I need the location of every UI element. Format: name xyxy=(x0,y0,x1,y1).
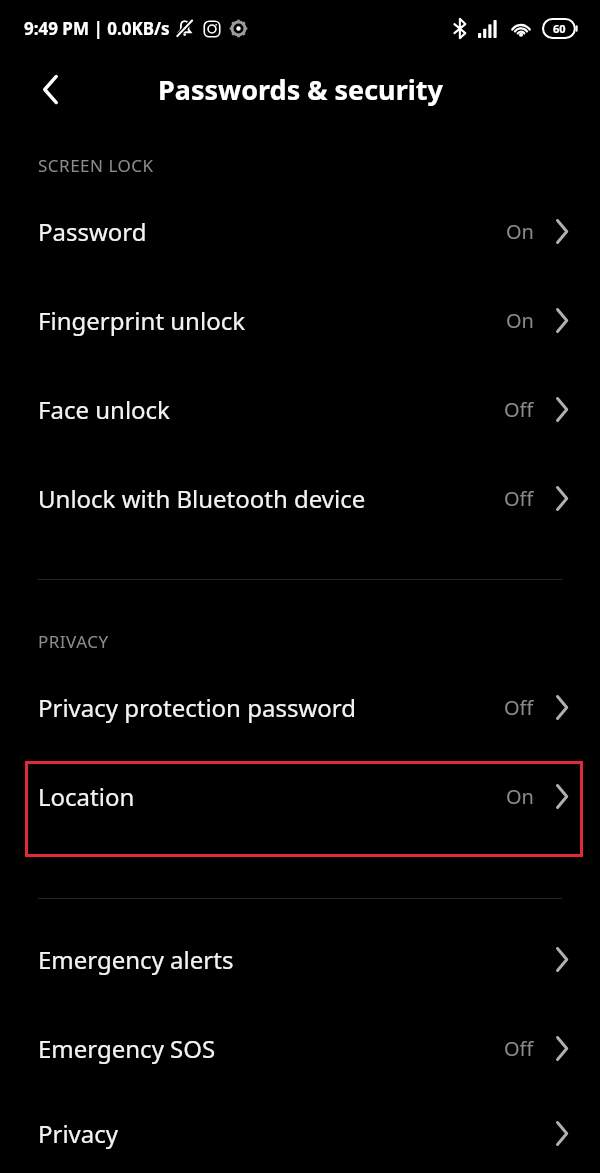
staticText: PRIVACY xyxy=(38,630,109,653)
staticText: On xyxy=(506,307,534,334)
button[interactable]: Unlock with Bluetooth device xyxy=(0,454,600,543)
button[interactable]: Fingerprint unlock xyxy=(0,276,600,365)
button[interactable]: Emergency alerts xyxy=(0,915,600,1004)
staticText: 60 xyxy=(553,21,566,36)
staticText: Off xyxy=(504,396,534,423)
staticText: Off xyxy=(504,485,534,512)
staticText: Password xyxy=(38,215,147,248)
button[interactable]: Privacy protection password xyxy=(0,663,600,752)
staticText: Privacy xyxy=(38,1117,119,1150)
staticText: 9:49 PM | 0.0KB/s xyxy=(24,17,170,40)
staticText: On xyxy=(506,783,534,810)
staticText: Unlock with Bluetooth device xyxy=(38,482,366,515)
button[interactable]: Privacy xyxy=(0,1093,600,1173)
button[interactable]: Back xyxy=(22,61,78,117)
button[interactable]: Location xyxy=(0,752,600,841)
staticText: Passwords & security xyxy=(158,71,443,108)
staticText: Location xyxy=(38,780,135,813)
staticText: Emergency SOS xyxy=(38,1032,216,1065)
staticText: Emergency alerts xyxy=(38,943,234,976)
button[interactable]: Emergency SOS xyxy=(0,1004,600,1093)
button[interactable]: Password xyxy=(0,187,600,276)
staticText: Face unlock xyxy=(38,393,170,426)
staticText: Fingerprint unlock xyxy=(38,304,245,337)
staticText: On xyxy=(506,218,534,245)
staticText: SCREEN LOCK xyxy=(38,154,154,177)
button[interactable]: Face unlock xyxy=(0,365,600,454)
staticText: Off xyxy=(504,694,534,721)
staticText: Privacy protection password xyxy=(38,691,356,724)
staticText: Off xyxy=(504,1035,534,1062)
